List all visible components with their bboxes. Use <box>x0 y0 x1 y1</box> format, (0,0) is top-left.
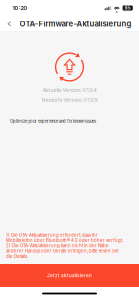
staticText: Optimize your experience and fix known i… <box>10 119 96 124</box>
staticText: 1) Die OTA-Aktualisierung erfordert, das… <box>6 232 123 259</box>
button[interactable]: Back <box>3 16 15 32</box>
staticText: Neueste Version: V 1.0.9 <box>41 97 97 103</box>
staticText: Jetzt aktualisieren <box>47 273 92 278</box>
staticText: 85 <box>125 5 131 11</box>
button[interactable]: Jetzt aktualisieren <box>0 264 139 287</box>
staticText: 10:20 <box>12 5 27 11</box>
staticText: OTA-Firmware-Aktualisierung <box>20 19 132 28</box>
staticText: Aktuelle Version: V 1.0.4 <box>42 87 96 93</box>
